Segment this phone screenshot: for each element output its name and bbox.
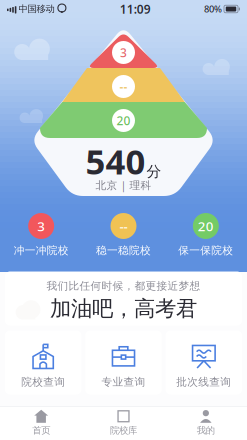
button[interactable]: 我们比任何时候，都更接近梦想 bbox=[5, 271, 242, 325]
button[interactable]: 首页 bbox=[0, 406, 82, 440]
button[interactable]: 我的 bbox=[165, 406, 247, 440]
staticText: 冲一冲院校 bbox=[14, 244, 69, 257]
button[interactable]: 院校查询 bbox=[5, 330, 81, 394]
button[interactable]: 院校库 bbox=[82, 406, 165, 440]
staticText: 3 bbox=[37, 217, 45, 235]
staticText: 11:09 bbox=[120, 1, 151, 17]
staticText: 我的 bbox=[197, 425, 215, 436]
staticText: 我们比任何时候，都更接近梦想 bbox=[46, 279, 200, 292]
staticText: 80% bbox=[204, 3, 222, 15]
staticText: 20 bbox=[116, 112, 130, 128]
staticText: 稳一稳院校 bbox=[96, 244, 151, 257]
staticText: 保一保院校 bbox=[178, 244, 233, 257]
staticText: 专业查询 bbox=[101, 375, 145, 389]
staticText: 批次线查询 bbox=[176, 375, 231, 389]
button[interactable]: 批次线查询 bbox=[166, 330, 242, 394]
staticText: 3 bbox=[120, 44, 127, 60]
staticText: 加油吧，高考君 bbox=[50, 295, 197, 322]
staticText: 北京 | 理科 bbox=[95, 178, 151, 192]
staticText: -- bbox=[119, 217, 127, 235]
staticText: 院校查询 bbox=[21, 375, 65, 389]
button[interactable]: 20 bbox=[165, 210, 247, 260]
button[interactable]: -- bbox=[82, 210, 165, 260]
staticText: 院校库 bbox=[110, 425, 137, 436]
staticText: -- bbox=[119, 78, 127, 94]
staticText: 首页 bbox=[32, 425, 50, 436]
button[interactable]: 3 bbox=[0, 210, 82, 260]
staticText: 540 bbox=[85, 138, 145, 184]
staticText: 20 bbox=[198, 217, 214, 235]
button[interactable]: 专业查询 bbox=[85, 330, 162, 394]
staticText: 分 bbox=[146, 162, 161, 180]
staticText: 中国移动 bbox=[18, 3, 54, 15]
